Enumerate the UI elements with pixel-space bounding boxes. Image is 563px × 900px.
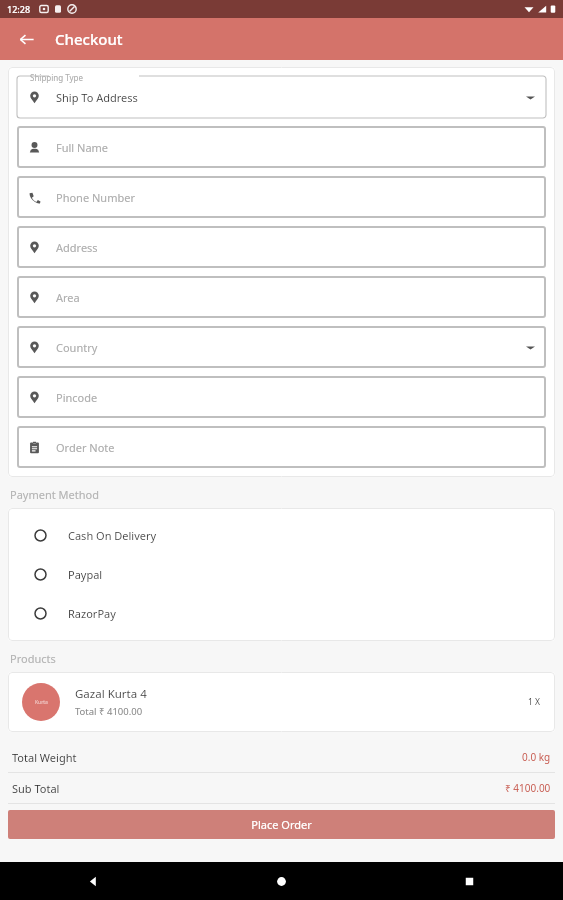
staticText: Kurta xyxy=(35,699,48,706)
button[interactable]: Order Note xyxy=(17,426,546,468)
staticText: 1 X xyxy=(528,696,541,708)
staticText: Place Order xyxy=(251,817,312,832)
staticText: Ship To Address xyxy=(56,90,138,105)
button[interactable]: Home xyxy=(187,862,375,900)
button[interactable]: Address xyxy=(17,226,546,268)
button[interactable]: Kurta xyxy=(8,672,555,732)
staticText: Sub Total xyxy=(12,781,60,796)
staticText: RazorPay xyxy=(68,606,116,621)
staticText: 12:28 xyxy=(7,3,31,15)
staticText: ₹ 4100.00 xyxy=(505,781,551,795)
button[interactable]: Cash On Delivery xyxy=(8,516,555,555)
button[interactable]: Paypal xyxy=(8,555,555,594)
staticText: Address xyxy=(56,240,98,255)
staticText: Total ₹ 4100.00 xyxy=(75,705,143,718)
staticText: Shipping Type xyxy=(30,72,84,83)
staticText: Paypal xyxy=(68,567,103,582)
button[interactable]: Place Order xyxy=(8,810,555,839)
button[interactable]: RazorPay xyxy=(8,594,555,633)
staticText: Area xyxy=(56,290,80,305)
staticText: Full Name xyxy=(56,140,109,155)
staticText: Cash On Delivery xyxy=(68,528,157,543)
button[interactable]: Phone Number xyxy=(17,176,546,218)
button[interactable]: Area xyxy=(17,276,546,318)
button[interactable]: Full Name xyxy=(17,126,546,168)
staticText: Payment Method xyxy=(10,487,99,502)
staticText: Total Weight xyxy=(12,750,77,765)
staticText: Pincode xyxy=(56,390,98,405)
button[interactable]: Country xyxy=(17,326,546,368)
staticText: Country xyxy=(56,340,98,355)
button[interactable]: Back xyxy=(0,862,187,900)
button[interactable]: Recent apps xyxy=(375,862,563,900)
staticText: Products xyxy=(10,651,56,666)
staticText: Phone Number xyxy=(56,190,135,205)
staticText: 0.0 kg xyxy=(522,750,551,764)
button[interactable]: Back xyxy=(8,21,44,57)
staticText: Gazal Kurta 4 xyxy=(75,686,147,702)
button[interactable]: Pincode xyxy=(17,376,546,418)
staticText: Checkout xyxy=(55,29,123,49)
staticText: Order Note xyxy=(56,440,115,455)
button[interactable]: Shipping Type xyxy=(17,76,546,118)
